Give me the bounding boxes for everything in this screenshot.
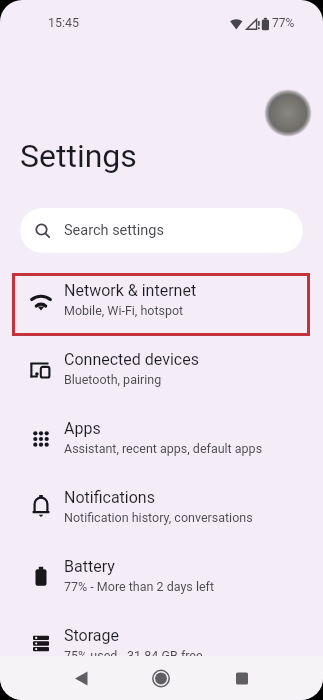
staticText: 77% - More than 2 days left (64, 579, 214, 594)
button[interactable]: Connected devices (0, 334, 323, 403)
staticText: 15:45 (48, 15, 80, 30)
staticText: Apps (64, 419, 101, 438)
staticText: Notifications (64, 488, 155, 507)
staticText: Mobile, Wi-Fi, hotspot (64, 303, 184, 318)
staticText: 75% used - 31.84 GB free (64, 648, 203, 663)
staticText: Settings (20, 137, 137, 175)
staticText: 77% (272, 16, 295, 30)
staticText: Assistant, recent apps, default apps (64, 441, 263, 456)
staticText: Storage (64, 626, 119, 645)
button[interactable]: Battery (0, 541, 323, 610)
button[interactable]: Network & internet (0, 265, 323, 334)
staticText: Search settings (64, 222, 164, 239)
button[interactable] (137, 656, 185, 700)
button[interactable] (264, 89, 312, 137)
button[interactable]: Apps (0, 403, 323, 472)
button[interactable] (218, 656, 266, 700)
staticText: Connected devices (64, 350, 199, 369)
staticText: Network & internet (64, 281, 197, 300)
button[interactable] (57, 656, 105, 700)
staticText: Bluetooth, pairing (64, 372, 162, 387)
button[interactable]: Notifications (0, 472, 323, 541)
staticText: Notification history, conversations (64, 510, 253, 525)
button[interactable]: Search settings (20, 208, 303, 253)
button[interactable]: Storage (0, 610, 323, 679)
staticText: Battery (64, 557, 115, 576)
